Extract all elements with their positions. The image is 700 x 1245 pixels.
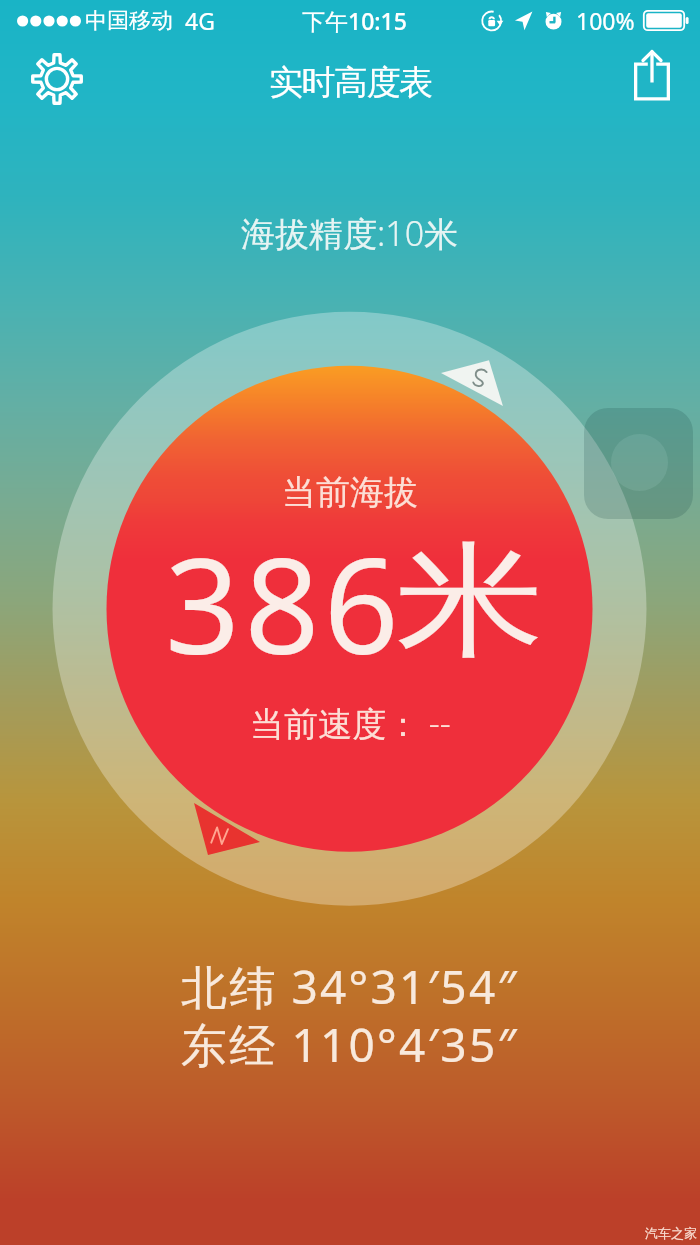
- staticText: 下午10:15: [302, 5, 407, 36]
- staticText: 北纬 34°31′54″: [181, 955, 519, 1018]
- staticText: 386: [165, 514, 404, 692]
- staticText: 米: [396, 524, 544, 680]
- staticText: 海拔精度:10米: [241, 210, 459, 256]
- staticText: 4G: [185, 5, 215, 36]
- button[interactable]: Share: [614, 28, 692, 124]
- staticText: 当前海拔: [282, 471, 418, 514]
- staticText: 中国移动: [85, 7, 173, 35]
- button[interactable]: Settings: [12, 34, 102, 124]
- staticText: 当前速度： --: [250, 700, 451, 746]
- staticText: 实时高度表: [269, 61, 432, 104]
- staticText: 汽车之家: [645, 1225, 697, 1241]
- staticText: 东经 110°4′35″: [181, 1013, 519, 1076]
- staticText: 100%: [576, 5, 635, 36]
